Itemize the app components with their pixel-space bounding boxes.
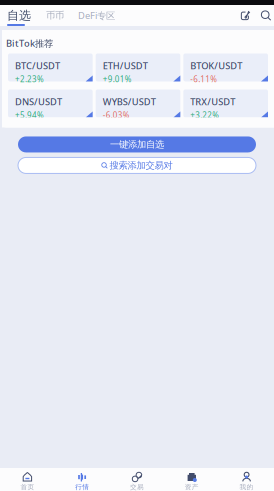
staticText: BitTok推荐	[6, 37, 53, 49]
staticText: 资产	[185, 483, 199, 491]
staticText: BTC/USDT	[15, 59, 60, 72]
button[interactable]: Search	[255, 5, 274, 26]
button[interactable]: 资产	[164, 468, 219, 491]
staticText: +5.94%	[15, 110, 44, 120]
staticText: 一键添加自选	[110, 139, 164, 150]
button[interactable]: BTOK/USDT	[183, 53, 268, 81]
button[interactable]: 搜索添加交易对	[18, 157, 256, 173]
staticText: 交易	[130, 483, 144, 491]
button[interactable]: 行情	[55, 468, 110, 491]
staticText: +2.23%	[15, 74, 44, 84]
staticText: TRX/USDT	[190, 95, 235, 108]
staticText: +9.01%	[103, 74, 132, 84]
button[interactable]: 自选	[0, 5, 38, 26]
staticText: WYBS/USDT	[103, 95, 156, 108]
button[interactable]: WYBS/USDT	[96, 89, 180, 117]
button[interactable]: 币币	[38, 5, 72, 26]
staticText: +3.22%	[190, 110, 219, 120]
button[interactable]: 一键添加自选	[18, 136, 256, 152]
button[interactable]: TRX/USDT	[183, 89, 268, 117]
staticText: 搜索添加交易对	[109, 160, 172, 171]
staticText: ETH/USDT	[103, 59, 148, 72]
button[interactable]: ETH/USDT	[96, 53, 180, 81]
button[interactable]: DNS/USDT	[8, 89, 93, 117]
staticText: 币币	[46, 10, 64, 21]
button[interactable]: 我的	[219, 468, 274, 491]
button[interactable]: Edit watchlist	[236, 5, 255, 26]
button[interactable]: DeFi专区	[72, 5, 121, 26]
staticText: DNS/USDT	[15, 95, 62, 108]
button[interactable]: 交易	[110, 468, 164, 491]
staticText: 行情	[75, 483, 89, 491]
staticText: 自选	[7, 8, 31, 23]
button[interactable]: 首页	[0, 468, 55, 491]
staticText: -6.11%	[190, 74, 217, 84]
staticText: 首页	[20, 483, 34, 491]
staticText: 我的	[240, 483, 254, 491]
staticText: BTOK/USDT	[190, 59, 242, 72]
staticText: -6.03%	[103, 110, 130, 120]
staticText: DeFi专区	[78, 9, 115, 22]
button[interactable]: BTC/USDT	[8, 53, 93, 81]
